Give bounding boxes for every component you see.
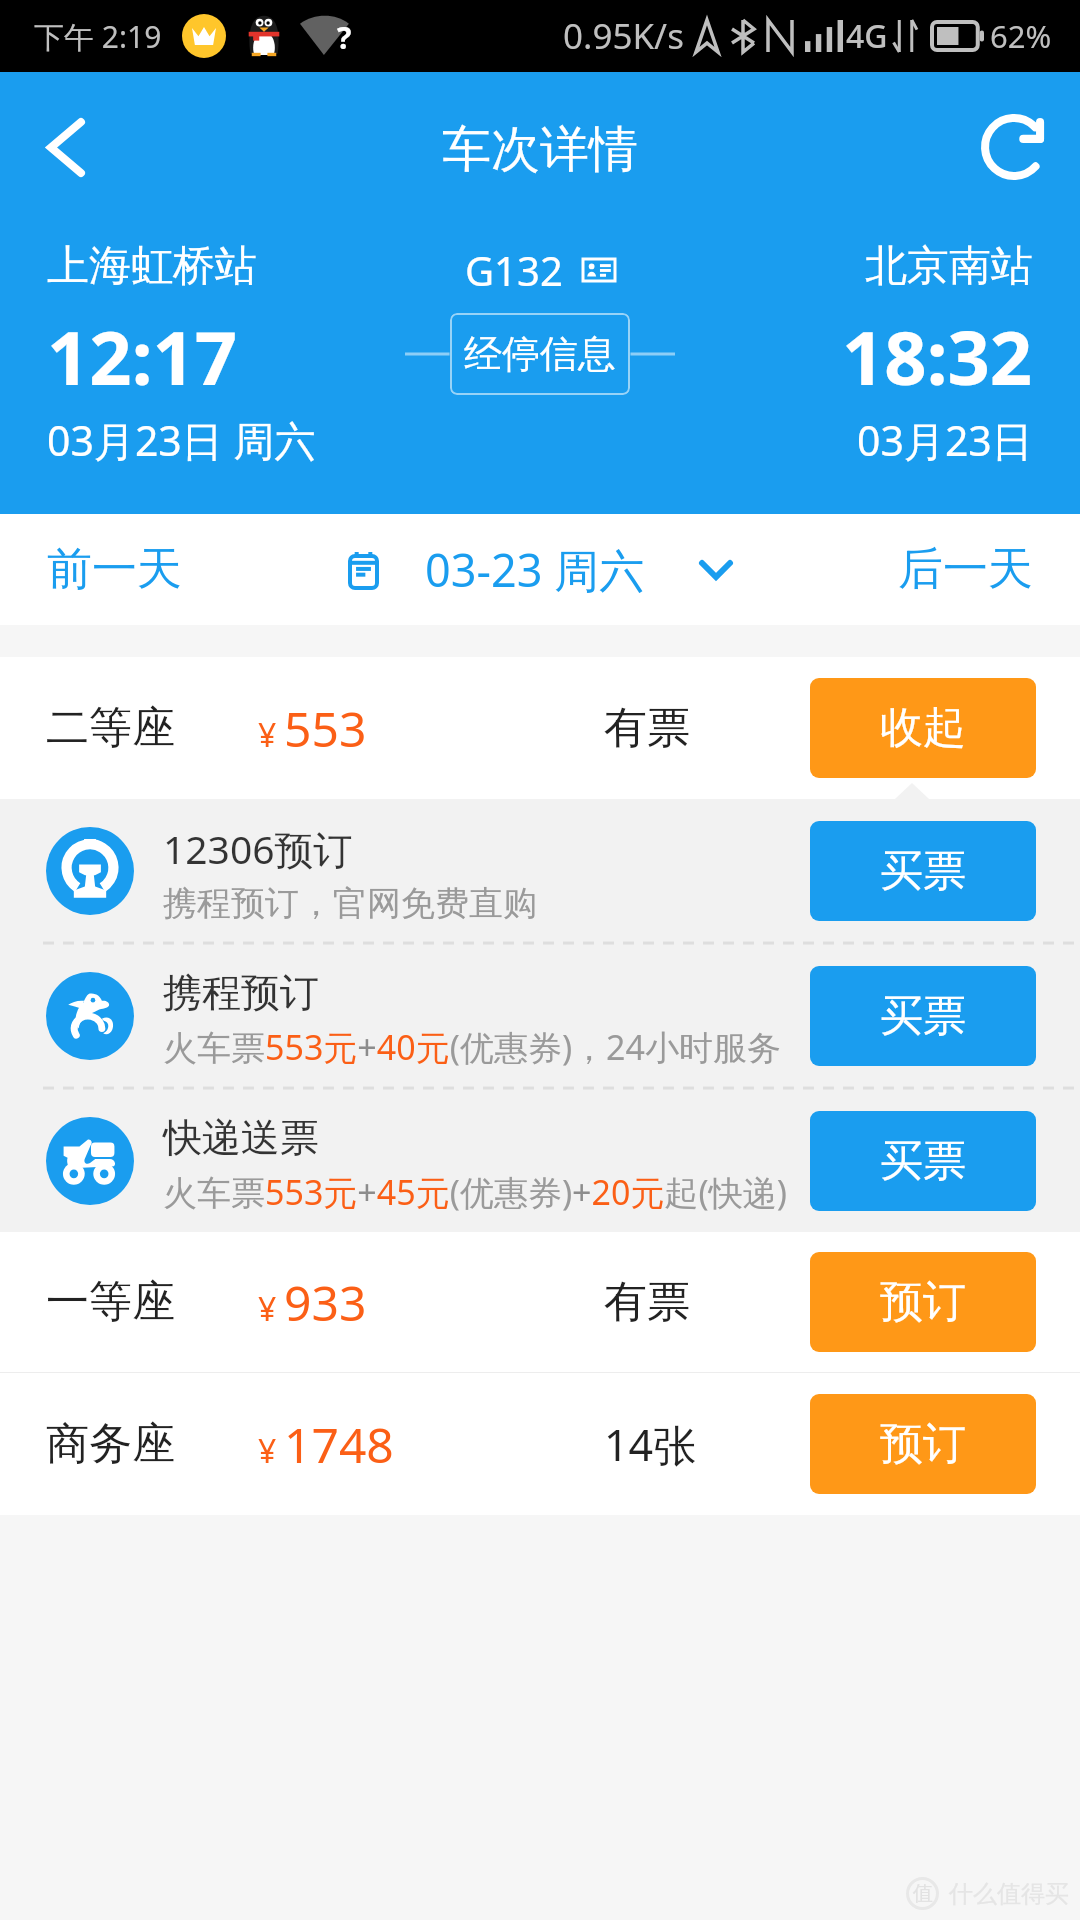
staticText: 一等座 bbox=[46, 1275, 175, 1329]
staticText: 火车票553元+45元(优惠券)+20元起(快递) bbox=[163, 1169, 787, 1215]
staticText: 携程预订，官网免费直购 bbox=[163, 882, 537, 925]
button[interactable]: 快递送票 bbox=[0, 1089, 1080, 1232]
staticText: 收起 bbox=[880, 701, 966, 755]
staticText: 1748 bbox=[284, 1412, 394, 1477]
staticText: 12306预订 bbox=[163, 822, 353, 875]
staticText: 车次详情 bbox=[442, 119, 638, 181]
staticText: ¥ bbox=[258, 713, 277, 757]
staticText: 火车票553元+40元(优惠券)，24小时服务 bbox=[163, 1024, 781, 1070]
staticText: 后一天 bbox=[898, 541, 1033, 598]
staticText: 03月23日 周六 bbox=[47, 412, 316, 468]
button[interactable]: 后一天 bbox=[851, 514, 1080, 625]
staticText: 商务座 bbox=[46, 1417, 175, 1471]
staticText: G132 bbox=[465, 243, 563, 297]
button[interactable]: 买票 bbox=[810, 966, 1036, 1066]
staticText: 18:32 bbox=[842, 306, 1033, 407]
button[interactable]: 携程预订 bbox=[0, 944, 1080, 1087]
staticText: 买票 bbox=[880, 989, 966, 1043]
staticText: 什么值得买 bbox=[949, 1879, 1069, 1909]
staticText: 933 bbox=[284, 1270, 367, 1335]
button[interactable]: 12306预订 bbox=[0, 799, 1080, 942]
staticText: 买票 bbox=[880, 844, 966, 898]
staticText: 03月23日 bbox=[857, 412, 1033, 468]
staticText: 有票 bbox=[604, 1275, 690, 1329]
staticText: 北京南站 bbox=[865, 240, 1033, 293]
staticText: 12:17 bbox=[47, 306, 238, 407]
button[interactable]: 买票 bbox=[810, 821, 1036, 921]
staticText: 值 bbox=[913, 1881, 933, 1906]
staticText: ¥ bbox=[258, 1429, 277, 1473]
button[interactable]: 03-23 周六 bbox=[328, 514, 753, 625]
staticText: 553 bbox=[284, 696, 367, 761]
staticText: 二等座 bbox=[46, 701, 175, 755]
staticText: 买票 bbox=[880, 1134, 966, 1188]
staticText: 携程预订 bbox=[163, 968, 319, 1017]
staticText: 下午 2:19 bbox=[34, 16, 162, 57]
staticText: 上海虹桥站 bbox=[47, 240, 257, 293]
staticText: 预订 bbox=[880, 1275, 966, 1329]
staticText: 快递送票 bbox=[163, 1113, 319, 1162]
staticText: 0.95K/s bbox=[563, 12, 684, 60]
button[interactable]: 买票 bbox=[810, 1111, 1036, 1211]
button[interactable]: 预订 bbox=[810, 1252, 1036, 1352]
staticText: ? bbox=[337, 17, 352, 55]
staticText: 预订 bbox=[880, 1417, 966, 1471]
staticText: 前一天 bbox=[47, 541, 182, 598]
staticText: 62% bbox=[990, 15, 1052, 57]
staticText: 4G bbox=[846, 14, 888, 58]
button[interactable]: 刷新 bbox=[959, 92, 1069, 202]
button[interactable]: 预订 bbox=[810, 1394, 1036, 1494]
staticText: 经停信息 bbox=[464, 330, 616, 378]
button[interactable]: 经停信息 bbox=[450, 313, 630, 395]
button[interactable]: 收起 bbox=[810, 678, 1036, 778]
button[interactable]: 前一天 bbox=[0, 514, 229, 625]
staticText: ¥ bbox=[258, 1287, 277, 1331]
button[interactable]: 返回 bbox=[11, 92, 121, 202]
staticText: 有票 bbox=[604, 701, 690, 755]
staticText: 14张 bbox=[604, 1415, 697, 1474]
staticText: 03-23 周六 bbox=[425, 539, 645, 600]
